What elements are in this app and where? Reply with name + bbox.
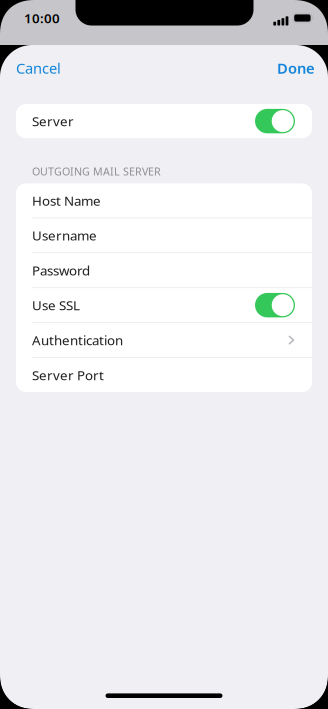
button[interactable]: Server Port (16, 358, 312, 392)
button[interactable]: Authentication (16, 323, 312, 357)
button[interactable]: Password (16, 253, 312, 287)
staticText: Host Name (32, 192, 101, 209)
staticText: Use SSL (32, 296, 80, 314)
staticText: Cancel (16, 58, 61, 78)
button[interactable]: Host Name (16, 183, 312, 218)
button[interactable]: Done (265, 51, 328, 85)
staticText: 10:00 (24, 9, 60, 27)
button[interactable]: Server (16, 104, 312, 138)
button[interactable]: Use SSL (16, 288, 312, 322)
staticText: Done (277, 58, 315, 78)
staticText: Server (32, 112, 74, 130)
staticText: OUTGOING MAIL SERVER (32, 164, 161, 178)
staticText: Server Port (32, 366, 104, 384)
staticText: Username (32, 226, 97, 244)
staticText: Password (32, 261, 90, 279)
staticText: Authentication (32, 331, 123, 349)
button[interactable]: Cancel (0, 51, 73, 85)
button[interactable]: Username (16, 218, 312, 252)
